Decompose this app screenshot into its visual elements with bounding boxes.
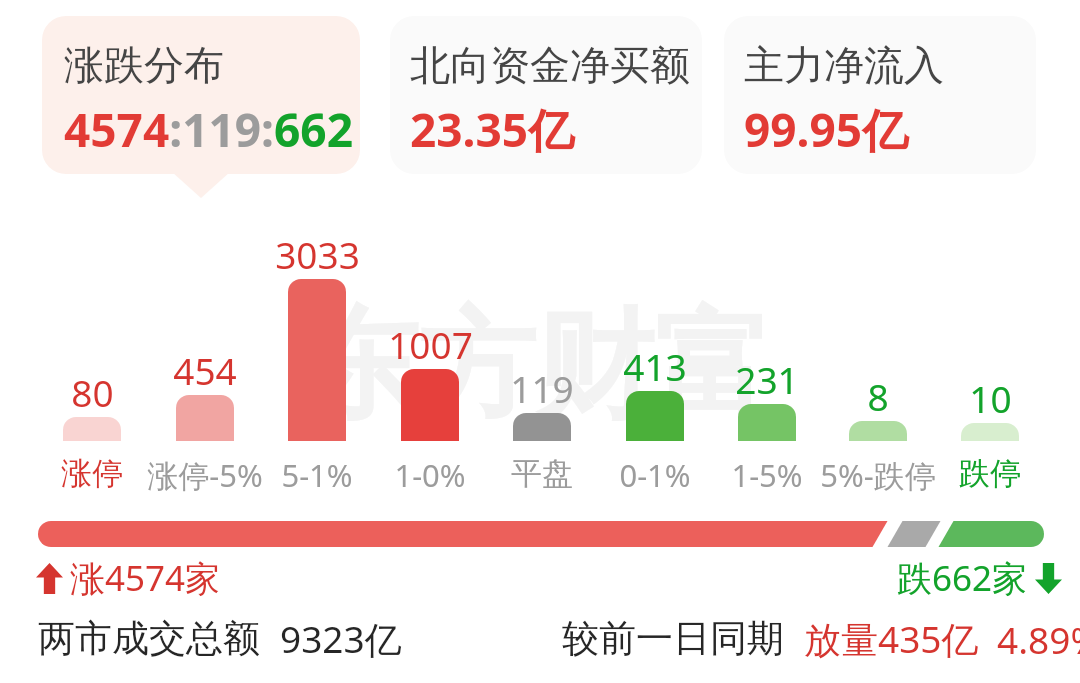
staticText: 4.89% <box>997 614 1080 664</box>
other: Declining <box>1035 563 1062 594</box>
staticText: 3033 <box>275 229 360 279</box>
staticText: 两市成交总额 <box>38 615 260 662</box>
staticText: 涨4574家 <box>70 554 221 602</box>
staticText: 119 <box>510 363 574 413</box>
button[interactable]: Advancing <box>36 554 221 602</box>
button[interactable] <box>288 279 346 441</box>
staticText: 10 <box>969 373 1012 423</box>
staticText: 1-0% <box>394 454 466 496</box>
staticText: 231 <box>735 354 799 404</box>
button[interactable] <box>626 391 684 441</box>
staticText: 454 <box>173 345 237 395</box>
staticText: 23.35亿 <box>410 98 575 161</box>
button[interactable]: 涨跌分布 <box>42 16 360 174</box>
button[interactable] <box>401 369 459 441</box>
staticText: 跌停 <box>959 454 1021 493</box>
button[interactable] <box>961 423 1019 441</box>
button[interactable] <box>738 404 796 441</box>
staticText: 0-1% <box>619 454 691 496</box>
button[interactable] <box>63 417 121 441</box>
staticText: 东方财富 <box>300 292 772 441</box>
staticText: 4574:119:662 <box>64 98 353 161</box>
staticText: 平盘 <box>511 454 573 493</box>
staticText: 放量435亿 <box>804 613 979 664</box>
staticText: 1-5% <box>731 454 803 496</box>
staticText: 9323亿 <box>280 613 402 664</box>
staticText: 5%-跌停 <box>820 454 936 496</box>
staticText: 主力净流入 <box>744 40 944 90</box>
other: Advancing <box>36 563 63 594</box>
button[interactable]: 主力净流入 <box>724 16 1036 174</box>
staticText: 较前一日同期 <box>562 615 784 662</box>
staticText: 1007 <box>388 319 473 369</box>
staticText: 80 <box>71 367 114 417</box>
staticText: 8 <box>867 371 889 421</box>
staticText: 5-1% <box>281 454 353 496</box>
button[interactable]: 北向资金净买额 <box>390 16 702 174</box>
staticText: 涨跌分布 <box>64 40 224 90</box>
button[interactable] <box>849 421 907 441</box>
staticText: 413 <box>623 341 687 391</box>
staticText: 涨停-5% <box>147 454 263 496</box>
button[interactable] <box>513 413 571 441</box>
staticText: 北向资金净买额 <box>410 40 690 90</box>
button[interactable] <box>176 395 234 441</box>
button[interactable]: 跌662家 <box>897 554 1062 602</box>
staticText: 跌662家 <box>897 554 1028 602</box>
staticText: 涨停 <box>61 454 123 493</box>
staticText: 99.95亿 <box>744 98 909 161</box>
